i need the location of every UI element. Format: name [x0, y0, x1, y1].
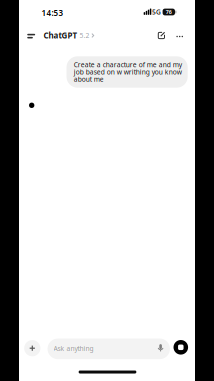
staticText: Ask anything: [54, 344, 94, 353]
button[interactable]: Ask anything: [47, 338, 170, 359]
staticText: 5.2: [79, 31, 89, 40]
staticText: 5G: [152, 8, 161, 16]
button[interactable]: Stop generating: [173, 340, 188, 355]
button[interactable]: New chat: [154, 28, 168, 42]
staticText: 14:53: [41, 8, 63, 18]
button[interactable]: More options: [174, 30, 186, 42]
button[interactable]: Open sidebar: [25, 30, 39, 43]
staticText: Create a characture of me and my: [74, 60, 182, 69]
staticText: ChatGPT: [43, 30, 77, 41]
button[interactable]: Add: [24, 340, 40, 356]
staticText: 76: [166, 8, 172, 16]
staticText: job based on w writhing you know: [74, 68, 182, 76]
button[interactable]: ChatGPT: [43, 30, 94, 41]
staticText: about me: [74, 75, 104, 84]
